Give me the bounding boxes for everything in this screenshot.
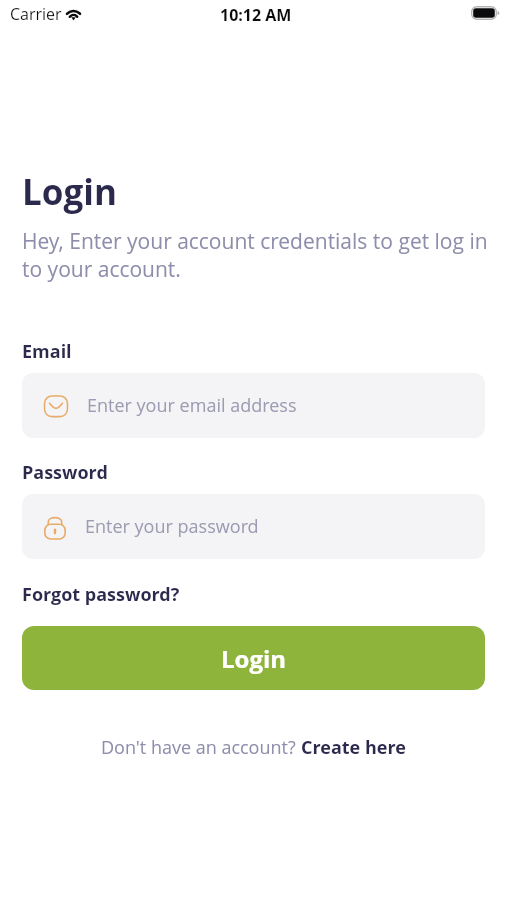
staticText: Login xyxy=(22,168,117,216)
button[interactable]: Password xyxy=(22,494,485,559)
other: Email xyxy=(42,392,70,420)
staticText: Password xyxy=(22,460,108,485)
staticText: Hey, Enter your account credentials to g… xyxy=(22,227,502,283)
staticText: Login xyxy=(221,642,287,675)
staticText: 10:12 AM xyxy=(220,4,292,26)
staticText: Carrier xyxy=(10,3,62,25)
other: Password xyxy=(44,514,66,540)
staticText: Forgot password? xyxy=(22,582,180,607)
staticText: Don't have an account? xyxy=(101,735,301,760)
staticText: Create here xyxy=(301,735,406,760)
other: Wi-Fi xyxy=(64,5,83,19)
button[interactable]: Email xyxy=(22,373,485,438)
other: Battery xyxy=(471,6,500,20)
staticText: Enter your email address xyxy=(87,393,297,418)
button[interactable]: Create here xyxy=(301,735,406,760)
button[interactable]: Forgot password? xyxy=(22,582,180,607)
button[interactable]: Login xyxy=(22,626,485,690)
staticText: Enter your password xyxy=(85,514,259,539)
staticText: Email xyxy=(22,339,72,364)
